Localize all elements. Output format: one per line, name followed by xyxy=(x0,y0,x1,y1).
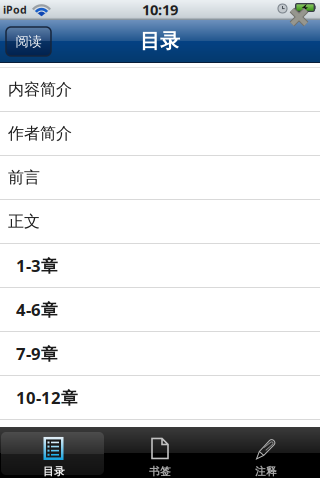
staticText: 目录 xyxy=(140,29,180,53)
staticText: 正文 xyxy=(8,212,40,231)
staticText: 7-9章 xyxy=(16,342,58,365)
staticText: 目录 xyxy=(43,465,65,478)
button[interactable]: 书签 xyxy=(107,427,213,478)
button[interactable]: 10-12章 xyxy=(0,376,320,420)
button[interactable]: 4-6章 xyxy=(0,288,320,332)
button[interactable]: 作者简介 xyxy=(0,112,320,156)
button[interactable]: 7-9章 xyxy=(0,332,320,376)
button[interactable]: 正文 xyxy=(0,200,320,244)
button[interactable]: 前言 xyxy=(0,156,320,200)
button[interactable]: 阅读 xyxy=(6,27,51,56)
staticText: 注释 xyxy=(255,465,277,478)
staticText: iPod xyxy=(3,2,27,17)
staticText: 前言 xyxy=(8,168,40,187)
staticText: 内容简介 xyxy=(8,80,72,99)
staticText: 10-12章 xyxy=(16,386,78,409)
staticText: 1-3章 xyxy=(16,254,58,277)
staticText: 阅读 xyxy=(15,33,41,50)
staticText: 4-6章 xyxy=(16,298,58,321)
staticText: 书签 xyxy=(149,465,171,478)
staticText: 10:19 xyxy=(142,0,178,19)
button[interactable]: 注释 xyxy=(213,427,319,478)
staticText: 作者简介 xyxy=(8,124,72,143)
button[interactable]: 目录 xyxy=(1,427,107,478)
button[interactable]: 内容简介 xyxy=(0,68,320,112)
button[interactable]: 1-3章 xyxy=(0,244,320,288)
